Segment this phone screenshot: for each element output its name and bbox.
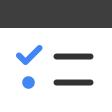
button[interactable]: Open task (0, 69, 112, 95)
button[interactable]: Completed task (0, 43, 112, 69)
